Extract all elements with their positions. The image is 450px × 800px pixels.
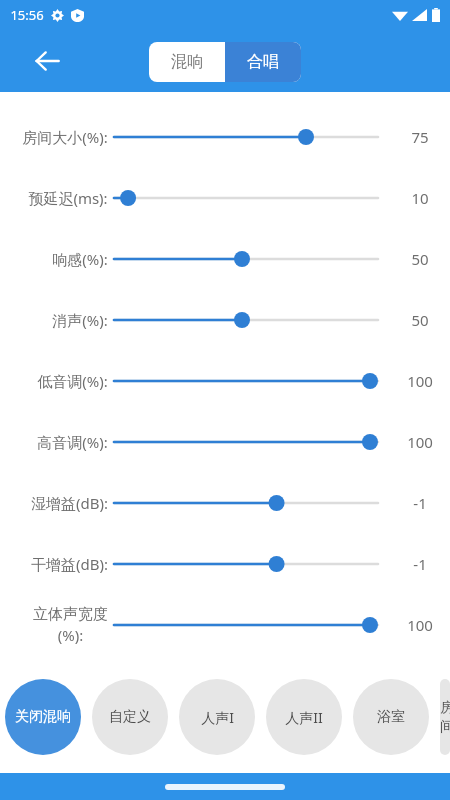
staticText: 混响 xyxy=(171,52,203,72)
staticText: 50 xyxy=(411,249,429,269)
staticText: 人声I xyxy=(201,708,234,727)
button[interactable]: Back xyxy=(26,40,68,82)
staticText: 15:56 xyxy=(10,6,44,24)
staticText: 人声II xyxy=(285,708,323,727)
button[interactable]: 立体声宽度 (%): xyxy=(0,594,450,655)
button[interactable]: 合唱 xyxy=(225,42,301,82)
button[interactable]: 人声I xyxy=(179,679,255,755)
staticText: -1 xyxy=(413,554,427,574)
staticText: 湿增益(dB): xyxy=(31,493,108,513)
staticText: 75 xyxy=(411,127,429,147)
staticText: -1 xyxy=(413,493,427,513)
staticText: 100 xyxy=(407,371,433,391)
staticText: 100 xyxy=(407,615,433,635)
staticText: 合唱 xyxy=(247,52,279,72)
staticText: 响感(%): xyxy=(52,249,108,269)
button[interactable]: 浴室 xyxy=(353,679,429,755)
staticText: 立体声宽度 (%): xyxy=(33,605,108,645)
staticText: 房间 xyxy=(440,699,450,735)
button[interactable]: 预延迟(ms): xyxy=(0,167,450,228)
button[interactable]: 干增益(dB): xyxy=(0,533,450,594)
staticText: 关闭混响 xyxy=(15,708,71,726)
staticText: 消声(%): xyxy=(52,310,108,330)
button[interactable]: 消声(%): xyxy=(0,289,450,350)
staticText: 高音调(%): xyxy=(37,432,108,452)
staticText: 100 xyxy=(407,432,433,452)
button[interactable]: 响感(%): xyxy=(0,228,450,289)
button[interactable]: 高音调(%): xyxy=(0,411,450,472)
button[interactable]: 湿增益(dB): xyxy=(0,472,450,533)
staticText: 浴室 xyxy=(377,708,405,726)
staticText: 自定义 xyxy=(109,708,151,726)
staticText: 预延迟(ms): xyxy=(28,188,108,208)
button[interactable]: 自定义 xyxy=(92,679,168,755)
button[interactable]: 人声II xyxy=(266,679,342,755)
staticText: 房间大小(%): xyxy=(22,127,108,147)
staticText: 干增益(dB): xyxy=(31,554,108,574)
staticText: 低音调(%): xyxy=(37,371,108,391)
staticText: 50 xyxy=(411,310,429,330)
button[interactable]: 关闭混响 xyxy=(5,679,81,755)
button[interactable]: 混响 xyxy=(149,42,225,82)
button[interactable]: 房间大小(%): xyxy=(0,106,450,167)
staticText: 10 xyxy=(411,188,429,208)
button[interactable]: 房间 xyxy=(440,679,450,755)
button[interactable]: 低音调(%): xyxy=(0,350,450,411)
